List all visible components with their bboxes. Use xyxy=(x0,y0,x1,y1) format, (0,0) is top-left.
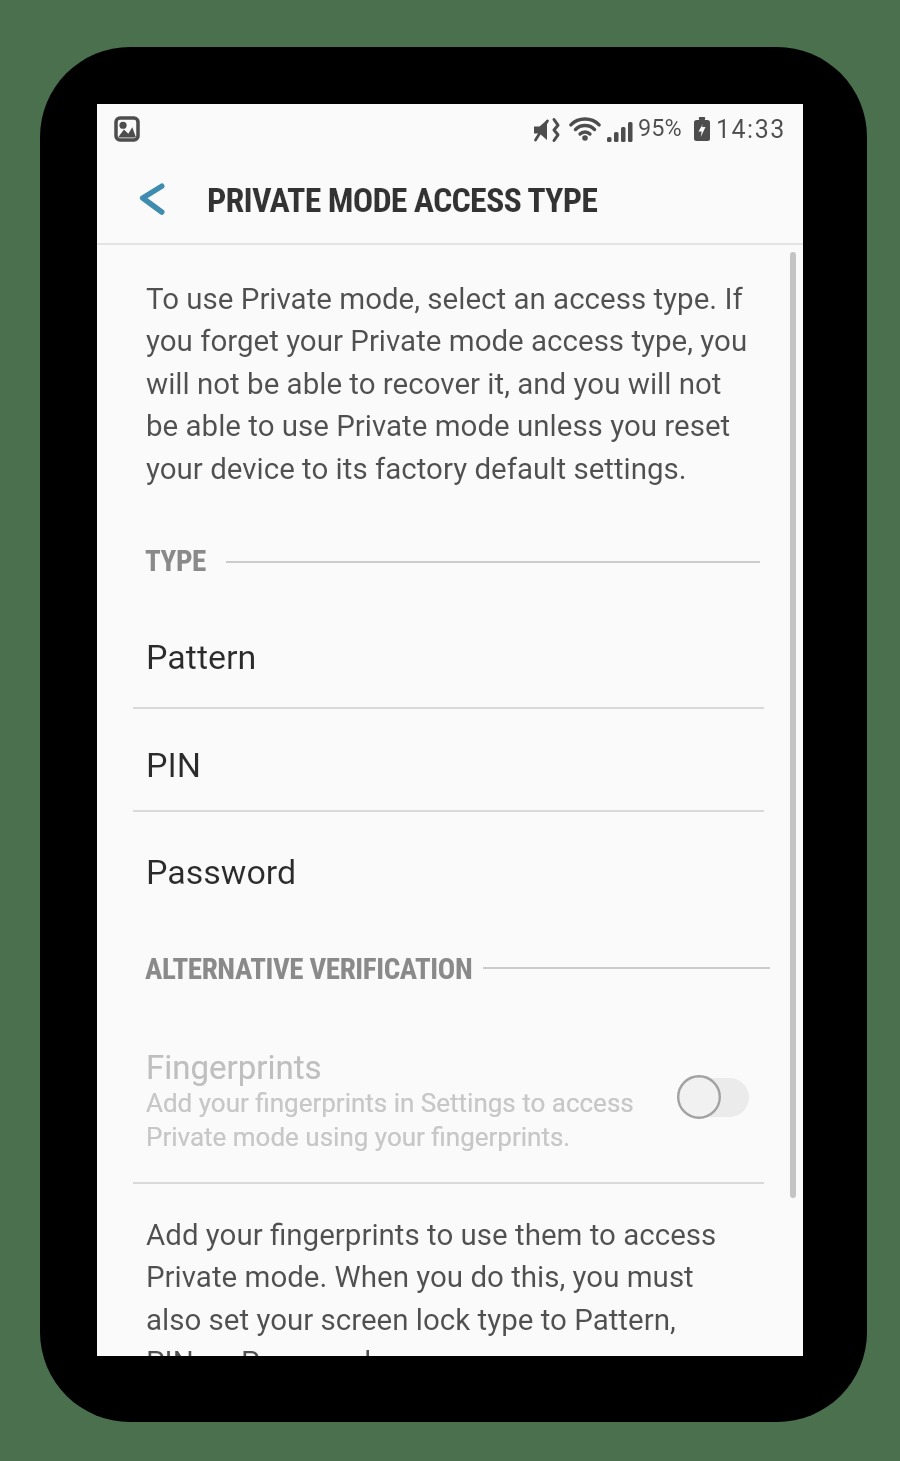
staticText: TYPE xyxy=(145,544,206,578)
staticText: Private mode. When you do this, you must xyxy=(146,1260,694,1295)
staticText: PIN xyxy=(146,745,201,785)
staticText: 14:33 xyxy=(716,115,786,144)
staticText: you forget your Private mode access type… xyxy=(146,324,748,359)
button[interactable]: PIN xyxy=(97,709,803,811)
button[interactable]: Pattern xyxy=(97,604,803,708)
button[interactable]: Password xyxy=(97,812,803,914)
staticText: Fingerprints xyxy=(146,1048,322,1087)
button[interactable]: Fingerprints xyxy=(97,1024,803,1182)
staticText: Private mode using your fingerprints. xyxy=(146,1122,571,1152)
staticText: will not be able to recover it, and you … xyxy=(146,367,722,402)
staticText: also set your screen lock type to Patter… xyxy=(146,1303,676,1338)
staticText: your device to its factory default setti… xyxy=(146,452,687,487)
staticText: PRIVATE MODE ACCESS TYPE xyxy=(207,180,598,220)
staticText: ALTERNATIVE VERIFICATION xyxy=(145,952,473,986)
staticText: Add your fingerprints in Settings to acc… xyxy=(146,1088,634,1118)
staticText: PIN, or Password. xyxy=(146,1345,380,1356)
button[interactable] xyxy=(127,170,183,226)
staticText: Pattern xyxy=(146,637,257,677)
staticText: 95% xyxy=(638,114,682,142)
staticText: Password xyxy=(146,852,297,892)
staticText: Add your fingerprints to use them to acc… xyxy=(146,1218,717,1253)
staticText: To use Private mode, select an access ty… xyxy=(146,282,743,317)
staticText: be able to use Private mode unless you r… xyxy=(146,409,731,444)
